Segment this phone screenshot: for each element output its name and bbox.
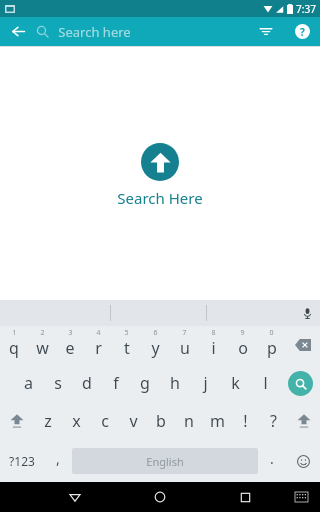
- button[interactable]: 5: [112, 326, 141, 364]
- staticText: 8: [211, 328, 216, 338]
- staticText: f: [113, 372, 119, 394]
- staticText: x: [72, 410, 81, 432]
- staticText: !: [243, 410, 248, 432]
- button[interactable]: 4: [84, 326, 112, 364]
- button[interactable]: 0: [257, 326, 286, 364]
- button[interactable]: 7: [170, 326, 199, 364]
- staticText: k: [231, 372, 240, 394]
- staticText: ?: [300, 25, 305, 39]
- button[interactable]: Help: [284, 17, 320, 46]
- button[interactable]: !: [231, 402, 259, 440]
- button[interactable]: Recents: [230, 482, 260, 512]
- staticText: 7: [182, 328, 187, 338]
- button[interactable]: b: [147, 402, 175, 440]
- button[interactable]: ?123: [0, 440, 44, 482]
- staticText: s: [54, 372, 62, 394]
- staticText: m: [210, 410, 225, 432]
- staticText: r: [95, 337, 102, 359]
- button[interactable]: c: [91, 402, 119, 440]
- staticText: 1: [12, 328, 17, 338]
- staticText: b: [156, 410, 166, 432]
- button[interactable]: Keyboard: [290, 486, 312, 508]
- button[interactable]: d: [72, 364, 101, 402]
- staticText: t: [124, 337, 130, 359]
- button[interactable]: g: [130, 364, 160, 402]
- button[interactable]: n: [175, 402, 203, 440]
- button[interactable]: k: [220, 364, 250, 402]
- staticText: 9: [240, 328, 245, 338]
- staticText: j: [203, 372, 208, 394]
- staticText: 2: [40, 328, 45, 338]
- button[interactable]: v: [119, 402, 147, 440]
- staticText: w: [36, 337, 49, 359]
- button[interactable]: Search here: [36, 17, 248, 46]
- staticText: a: [24, 372, 33, 394]
- button[interactable]: ?: [259, 402, 287, 440]
- button[interactable]: Backspace: [286, 326, 320, 364]
- staticText: y: [151, 337, 160, 359]
- button[interactable]: Back: [0, 17, 36, 46]
- button[interactable]: h: [160, 364, 190, 402]
- button[interactable]: 9: [228, 326, 257, 364]
- button[interactable]: ,: [44, 440, 72, 482]
- staticText: 7:37: [296, 2, 316, 16]
- staticText: English: [146, 454, 184, 469]
- staticText: ?123: [9, 453, 35, 469]
- staticText: 5: [124, 328, 129, 338]
- button[interactable]: 8: [199, 326, 228, 364]
- button[interactable]: Shift: [287, 402, 320, 440]
- staticText: h: [170, 372, 180, 394]
- staticText: ,: [56, 449, 60, 468]
- staticText: v: [129, 410, 138, 432]
- button[interactable]: Voice input: [294, 300, 320, 326]
- staticText: d: [82, 372, 92, 394]
- staticText: Search Here: [117, 188, 203, 208]
- button[interactable]: l: [250, 364, 280, 402]
- button[interactable]: Search: [280, 364, 320, 402]
- button[interactable]: Back: [60, 482, 90, 512]
- button[interactable]: x: [62, 402, 91, 440]
- staticText: u: [180, 337, 190, 359]
- staticText: 4: [96, 328, 101, 338]
- button[interactable]: 2: [28, 326, 56, 364]
- staticText: g: [140, 372, 150, 394]
- button[interactable]: English: [72, 448, 258, 474]
- button[interactable]: j: [190, 364, 220, 402]
- button[interactable]: f: [101, 364, 130, 402]
- staticText: p: [267, 337, 277, 359]
- staticText: o: [238, 337, 248, 359]
- button[interactable]: m: [203, 402, 231, 440]
- staticText: e: [65, 337, 75, 359]
- staticText: l: [263, 372, 268, 394]
- staticText: .: [270, 449, 274, 468]
- staticText: q: [9, 337, 19, 359]
- button[interactable]: Emoji: [286, 440, 320, 482]
- button[interactable]: z: [33, 402, 62, 440]
- button[interactable]: s: [43, 364, 72, 402]
- staticText: n: [184, 410, 194, 432]
- button[interactable]: Filter: [248, 17, 284, 46]
- button[interactable]: .: [258, 440, 286, 482]
- staticText: 0: [269, 328, 274, 338]
- staticText: z: [44, 410, 52, 432]
- button[interactable]: Home: [145, 482, 175, 512]
- staticText: Search here: [58, 23, 131, 41]
- staticText: 3: [68, 328, 73, 338]
- button[interactable]: a: [14, 364, 43, 402]
- button[interactable]: 3: [56, 326, 84, 364]
- staticText: i: [211, 337, 216, 359]
- staticText: ?: [270, 410, 277, 432]
- button[interactable]: 1: [0, 326, 28, 364]
- button[interactable]: 6: [141, 326, 170, 364]
- button[interactable]: Shift: [0, 402, 33, 440]
- button[interactable]: Search Here: [141, 143, 179, 181]
- staticText: c: [101, 410, 109, 432]
- staticText: 6: [153, 328, 158, 338]
